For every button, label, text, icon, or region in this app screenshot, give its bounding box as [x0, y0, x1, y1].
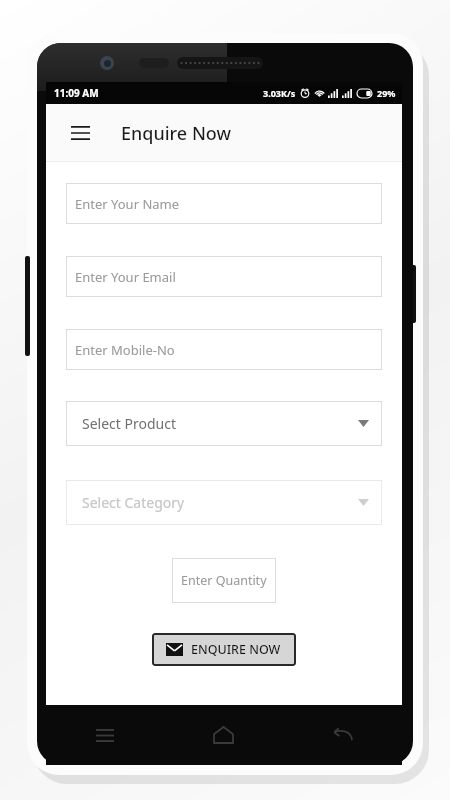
button[interactable]: ENQUIRE NOW: [152, 633, 296, 666]
button[interactable]: Enter Quantity: [172, 558, 276, 603]
staticText: 29%: [377, 87, 396, 99]
button[interactable]: Open navigation menu: [60, 113, 100, 153]
staticText: Enter Your Name: [75, 195, 180, 213]
staticText: 11:09 AM: [54, 86, 99, 100]
button[interactable]: Enter Your Email: [66, 256, 382, 297]
button[interactable]: Recent apps: [46, 705, 164, 765]
button[interactable]: Enter Your Name: [66, 183, 382, 224]
button[interactable]: Select Category: [66, 480, 382, 525]
staticText: Select Category: [82, 493, 185, 512]
staticText: Enter Your Email: [75, 268, 176, 286]
staticText: Enquire Now: [121, 121, 232, 146]
button[interactable]: Home: [164, 705, 283, 765]
staticText: ENQUIRE NOW: [191, 641, 281, 658]
button[interactable]: Select Product: [66, 401, 382, 446]
staticText: 3.03K/s: [263, 87, 296, 99]
staticText: Select Product: [82, 414, 176, 433]
staticText: Enter Mobile-No: [75, 341, 175, 359]
button[interactable]: Enter Mobile-No: [66, 329, 382, 370]
staticText: Enter Quantity: [181, 572, 267, 589]
button[interactable]: Back: [283, 705, 402, 765]
